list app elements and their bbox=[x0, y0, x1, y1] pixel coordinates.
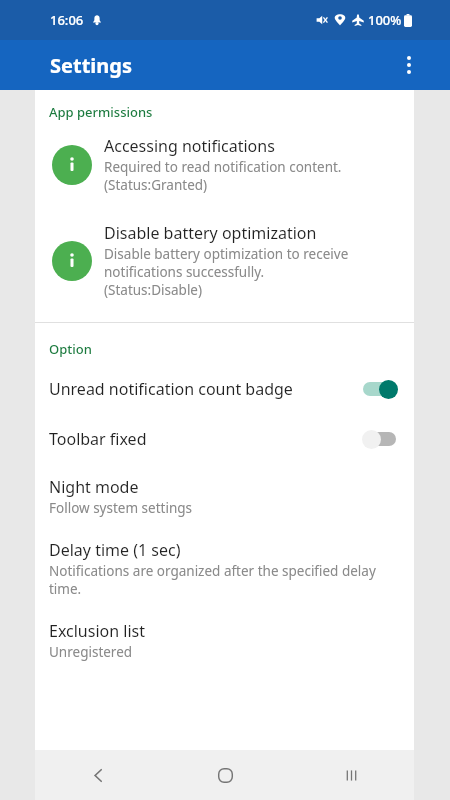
button[interactable]: Delay time (1 sec) bbox=[35, 537, 414, 600]
staticText: 16:06 bbox=[50, 11, 84, 29]
staticText: notifications successfully. bbox=[104, 263, 265, 281]
staticText: (Status:Disable) bbox=[104, 281, 203, 299]
staticText: Toolbar fixed bbox=[49, 428, 362, 450]
button[interactable]: More options bbox=[394, 50, 424, 80]
button[interactable]: Exclusion list bbox=[35, 618, 414, 663]
staticText: Option bbox=[49, 340, 92, 358]
button[interactable]: Recent apps bbox=[288, 750, 414, 800]
staticText: Unregistered bbox=[49, 643, 133, 661]
staticText: Required to read notification content. bbox=[104, 158, 342, 176]
button[interactable]: Home bbox=[162, 750, 288, 800]
staticText: (Status:Granted) bbox=[104, 176, 208, 194]
button[interactable]: Back bbox=[35, 750, 162, 800]
button[interactable]: Unread notification count badge bbox=[35, 364, 414, 414]
staticText: Unread notification count badge bbox=[49, 378, 362, 400]
staticText: Follow system settings bbox=[49, 499, 193, 517]
staticText: Delay time (1 sec) bbox=[49, 539, 181, 561]
staticText: Exclusion list bbox=[49, 620, 145, 642]
button[interactable]: Toolbar fixed bbox=[35, 414, 414, 464]
staticText: Accessing notifications bbox=[104, 135, 275, 157]
staticText: 100% bbox=[368, 11, 402, 29]
button[interactable]: Night mode bbox=[35, 474, 414, 519]
staticText: Night mode bbox=[49, 476, 139, 498]
staticText: time. bbox=[49, 580, 82, 598]
button[interactable]: Disable battery optimization bbox=[35, 214, 414, 303]
button[interactable]: Accessing notifications bbox=[35, 127, 414, 198]
staticText: Settings bbox=[50, 52, 132, 79]
staticText: App permissions bbox=[49, 103, 153, 121]
staticText: Disable battery optimization to receive bbox=[104, 245, 349, 263]
staticText: Notifications are organized after the sp… bbox=[49, 562, 376, 580]
staticText: Disable battery optimization bbox=[104, 222, 317, 244]
